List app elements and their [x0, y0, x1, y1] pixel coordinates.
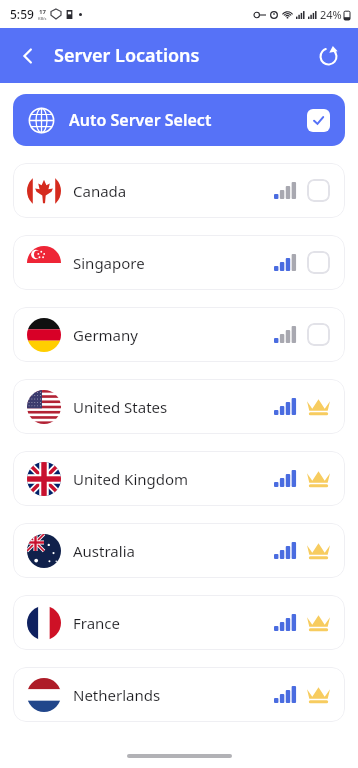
other: Premium	[307, 613, 330, 632]
button[interactable]: United States	[13, 379, 345, 434]
button[interactable]: Auto Server Select	[13, 94, 345, 146]
staticText: United States	[73, 397, 168, 417]
staticText: KB/s	[38, 16, 47, 21]
button[interactable]: Netherlands	[13, 667, 345, 722]
staticText: Netherlands	[73, 685, 161, 705]
button[interactable]: Germany	[13, 307, 345, 362]
other: Premium	[307, 685, 330, 704]
button[interactable]: Refresh	[308, 36, 348, 76]
button[interactable]: United Kingdom	[13, 451, 345, 506]
button[interactable]: Canada	[13, 163, 345, 218]
other: Premium	[307, 541, 330, 560]
staticText: Australia	[73, 541, 135, 561]
other: Premium	[307, 469, 330, 488]
staticText: Germany	[73, 325, 138, 345]
staticText: Singapore	[73, 253, 145, 273]
staticText: 17	[39, 8, 46, 16]
staticText: United Kingdom	[73, 469, 189, 489]
button[interactable]: France	[13, 595, 345, 650]
staticText: 5:59	[10, 6, 34, 22]
staticText: Canada	[73, 181, 127, 201]
button[interactable]: Australia	[13, 523, 345, 578]
button[interactable]: Singapore	[13, 235, 345, 290]
staticText: Server Locations	[54, 43, 200, 68]
staticText: Auto Server Select	[69, 109, 212, 131]
other: Premium	[307, 397, 330, 416]
staticText: France	[73, 613, 121, 633]
button[interactable]: Back	[8, 36, 48, 76]
staticText: 24%	[320, 7, 342, 22]
